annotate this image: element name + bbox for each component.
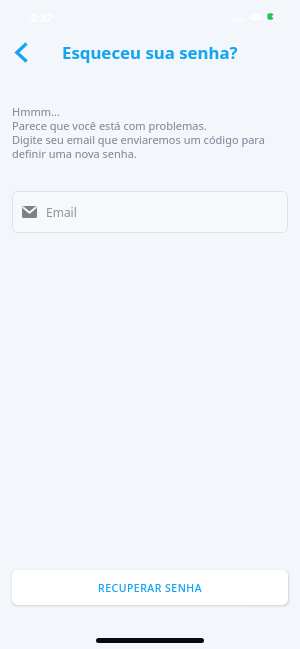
staticText: Esqueceu sua senha?: [62, 41, 238, 64]
staticText: 2:37: [30, 10, 53, 26]
button[interactable]: RECUPERAR SENHA: [12, 570, 288, 605]
button[interactable]: Back: [6, 37, 36, 67]
staticText: Hmmm... Parece que você está com problem…: [12, 104, 265, 161]
staticText: RECUPERAR SENHA: [98, 581, 203, 595]
button[interactable]: Email: [12, 191, 288, 233]
staticText: Email: [46, 204, 77, 220]
